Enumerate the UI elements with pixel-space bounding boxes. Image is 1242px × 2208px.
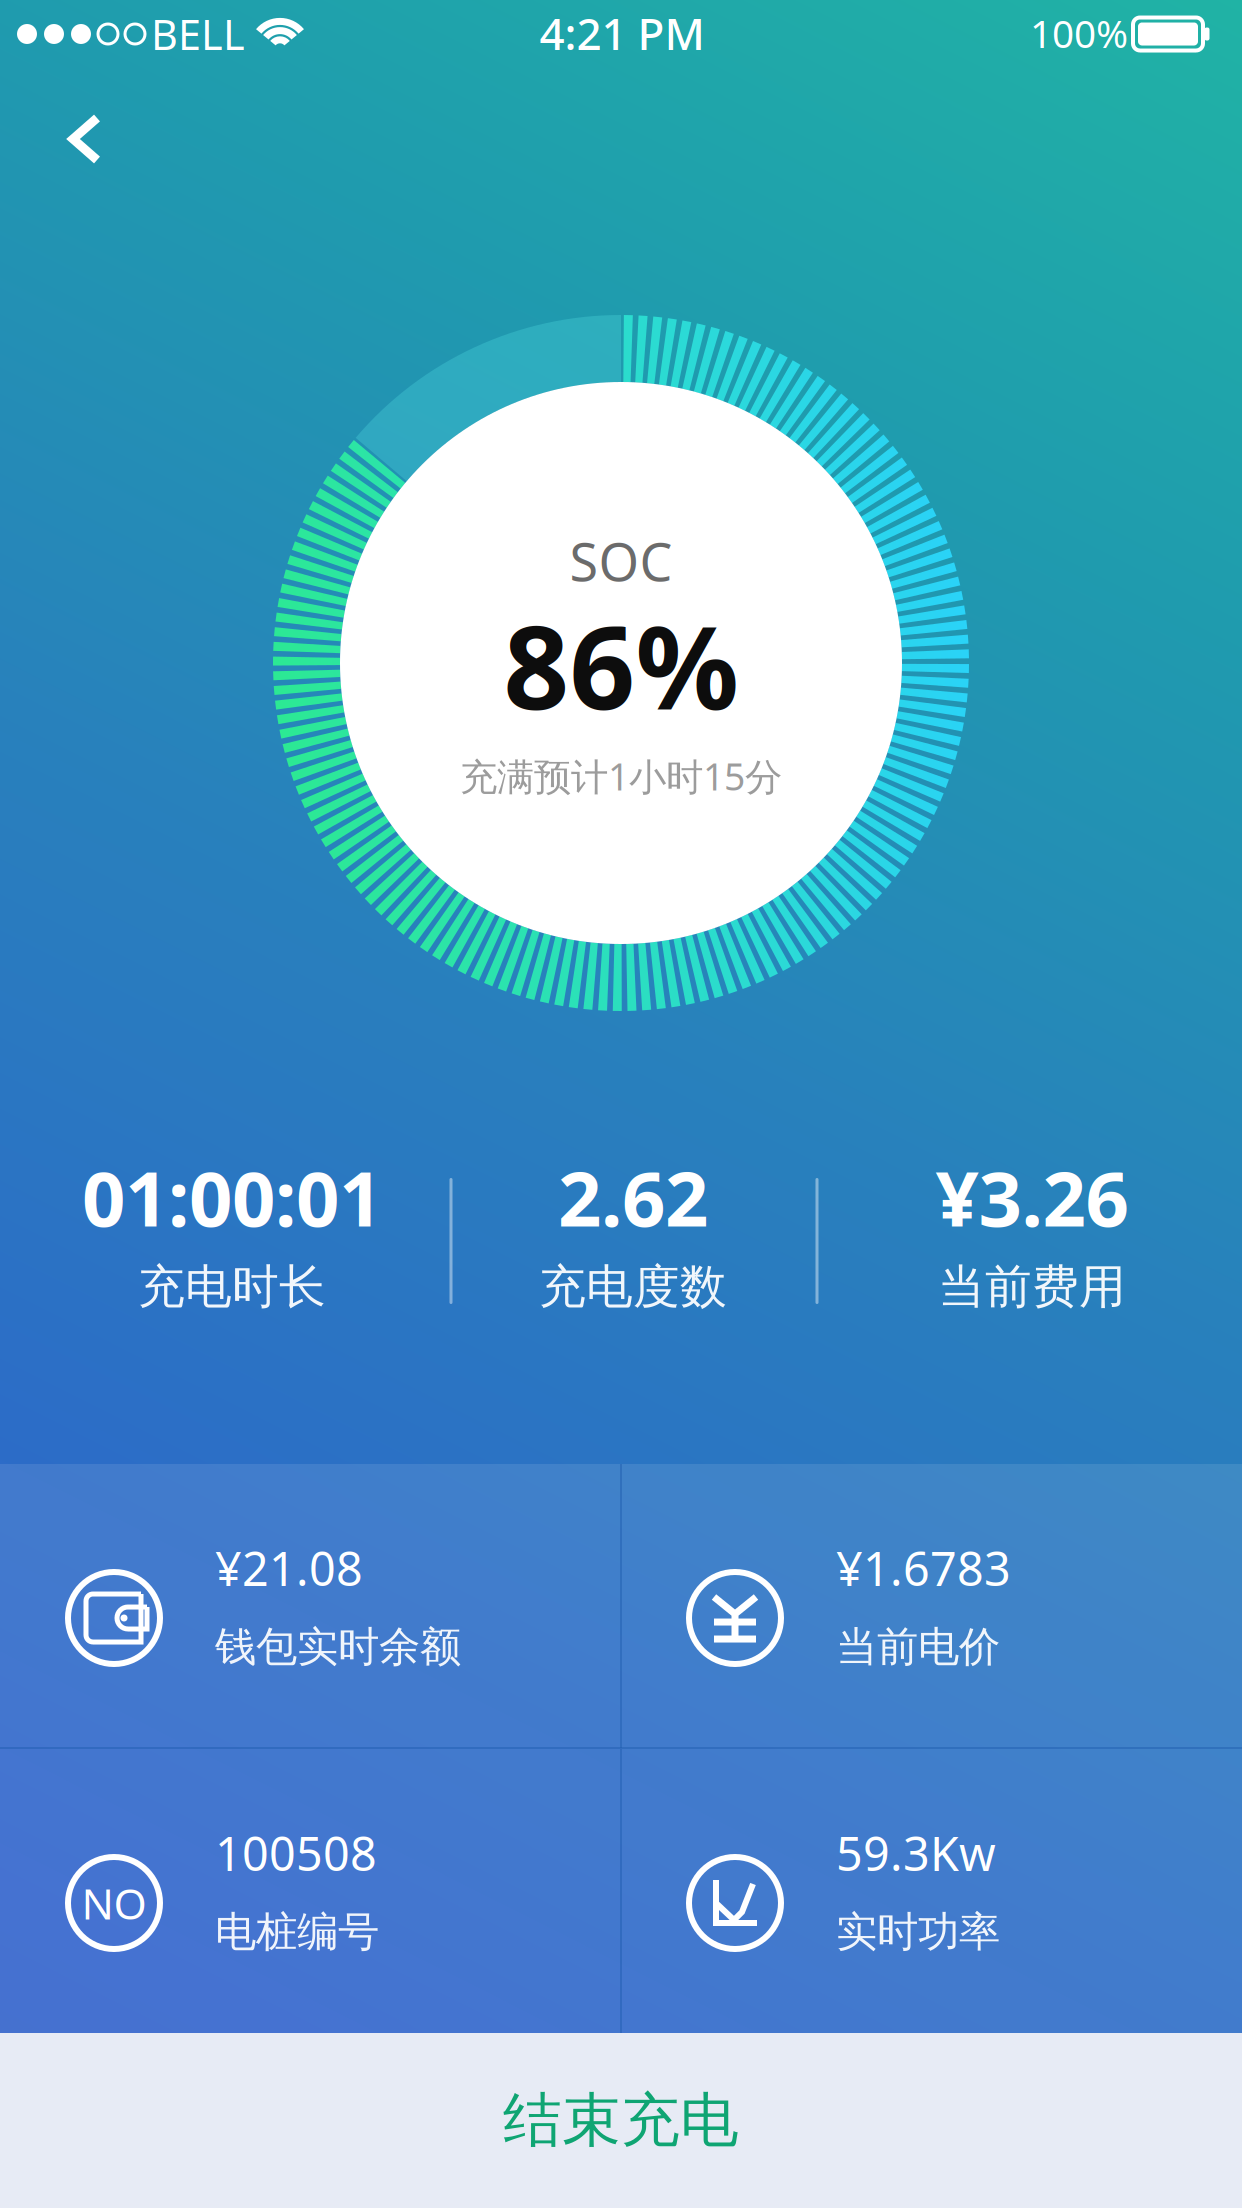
button[interactable]: Back xyxy=(0,0,160,198)
staticText: 59.3Kw xyxy=(836,1822,996,1884)
button[interactable]: 结束充电 xyxy=(0,2033,1242,2208)
staticText: 钱包实时余额 xyxy=(215,1622,461,1672)
staticText: 当前费用 xyxy=(938,1258,1126,1316)
staticText: 实时功率 xyxy=(836,1907,1000,1957)
staticText: 86% xyxy=(503,589,738,741)
button[interactable]: 59.3Kw xyxy=(622,1749,1242,2033)
staticText: ¥21.08 xyxy=(215,1537,363,1599)
staticText: 充电度数 xyxy=(539,1258,727,1316)
staticText: 100508 xyxy=(215,1822,377,1884)
staticText: 01:00:01 xyxy=(82,1146,382,1247)
staticText: ¥1.6783 xyxy=(836,1537,1011,1599)
staticText: ¥3.26 xyxy=(935,1146,1128,1247)
staticText: 结束充电 xyxy=(503,2084,739,2157)
staticText: 2.62 xyxy=(558,1146,708,1247)
staticText: 充电时长 xyxy=(138,1258,326,1316)
staticText: 电桩编号 xyxy=(215,1907,379,1957)
staticText: 4:21 PM xyxy=(539,4,704,62)
staticText: 充满预计1小时15分 xyxy=(460,751,782,801)
staticText: 当前电价 xyxy=(836,1622,1000,1672)
button[interactable]: NO xyxy=(1,1749,621,2033)
button[interactable]: ¥1.6783 xyxy=(622,1464,1242,1748)
button[interactable]: ¥21.08 xyxy=(1,1464,621,1748)
staticText: NO xyxy=(81,1875,146,1931)
staticText: BELL xyxy=(151,7,245,61)
staticText: SOC xyxy=(569,526,672,596)
staticText: 100% xyxy=(1030,7,1128,59)
